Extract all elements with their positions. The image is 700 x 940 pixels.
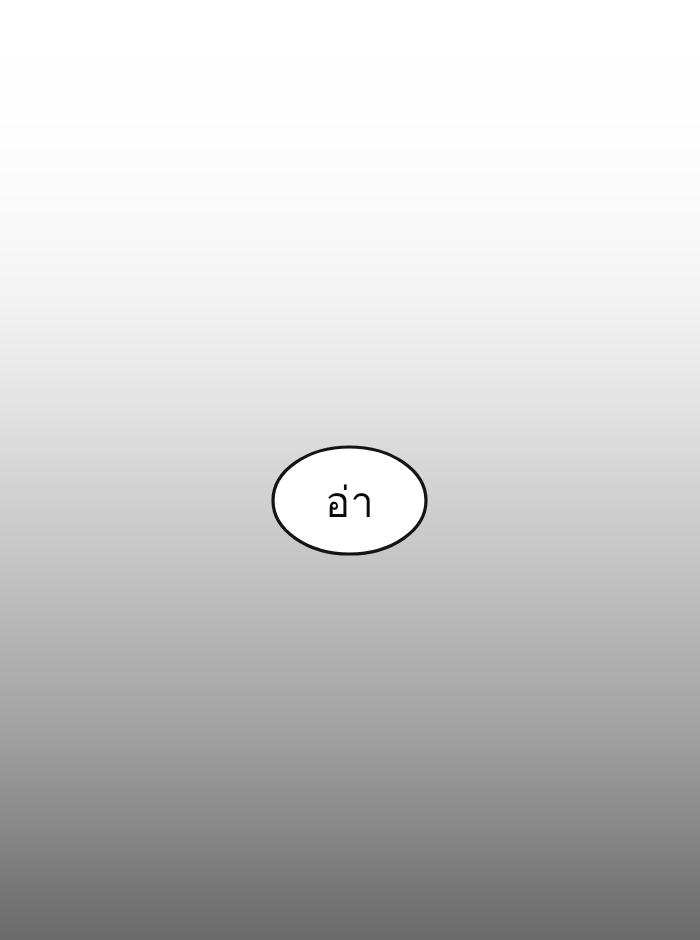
button[interactable]: อ่า speech bubble <box>0 0 700 940</box>
